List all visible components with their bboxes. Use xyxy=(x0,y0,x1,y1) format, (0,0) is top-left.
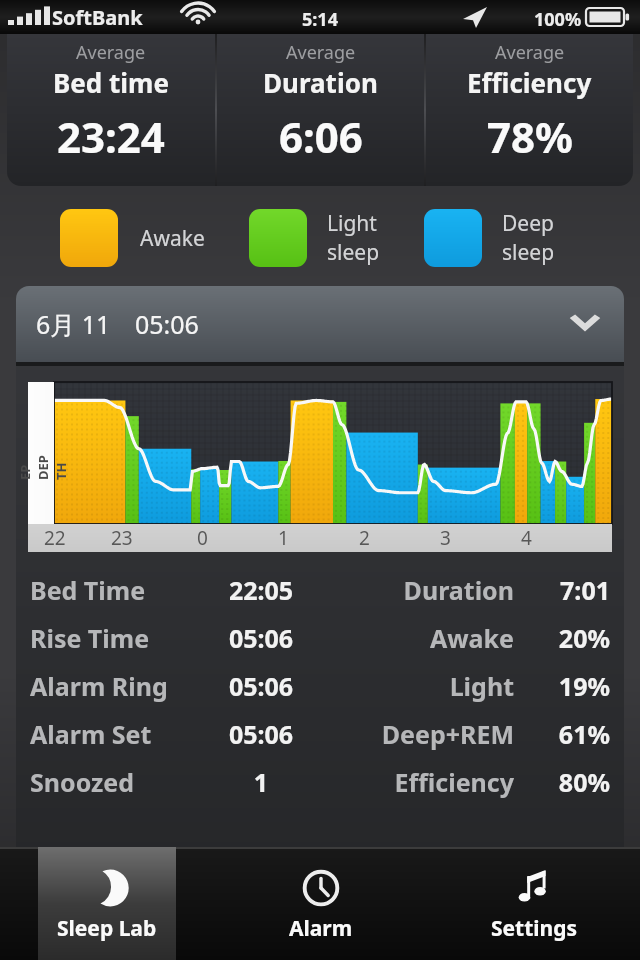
staticText: Alarm Set xyxy=(30,717,200,751)
staticText: 22:05 xyxy=(200,573,322,607)
button[interactable]: Average xyxy=(217,34,424,186)
staticText: Light xyxy=(322,669,514,703)
staticText: 1 xyxy=(200,765,322,799)
staticText: Snoozed xyxy=(30,765,200,799)
staticText: Average xyxy=(286,40,356,65)
staticText: Alarm xyxy=(289,914,353,943)
staticText: 23 xyxy=(111,525,133,551)
button[interactable]: 6月 11 xyxy=(16,286,624,362)
staticText: 4 xyxy=(521,525,532,551)
staticText: SLEEP DEPTH xyxy=(16,454,70,480)
staticText: sleep xyxy=(327,238,380,267)
staticText: Deep+REM xyxy=(322,717,514,751)
staticText: Bed time xyxy=(53,65,169,100)
staticText: 05:06 xyxy=(200,669,322,703)
button[interactable]: Settings xyxy=(465,847,603,960)
button[interactable]: Average xyxy=(426,34,633,186)
button[interactable]: Average xyxy=(7,34,215,186)
staticText: 80% xyxy=(528,765,610,799)
staticText: 7:01 xyxy=(528,573,610,607)
staticText: 5:14 xyxy=(302,7,338,32)
staticText: Awake xyxy=(140,224,205,253)
staticText: 19% xyxy=(528,669,610,703)
staticText: Awake xyxy=(322,621,514,655)
staticText: 20% xyxy=(528,621,610,655)
staticText: 05:06 xyxy=(135,307,199,341)
staticText: 05:06 xyxy=(200,717,322,751)
button[interactable]: Snoozed xyxy=(30,758,610,806)
staticText: 3 xyxy=(440,525,451,551)
button[interactable]: Alarm Ring xyxy=(30,662,610,710)
staticText: 22 xyxy=(44,525,66,551)
button[interactable]: Bed Time xyxy=(30,566,610,614)
staticText: Duration xyxy=(322,573,514,607)
staticText: 2 xyxy=(359,525,370,551)
staticText: Efficiency xyxy=(322,765,514,799)
staticText: Average xyxy=(76,40,146,65)
staticText: 0 xyxy=(197,525,208,551)
staticText: Light xyxy=(327,209,377,238)
button[interactable]: Rise Time xyxy=(30,614,610,662)
staticText: sleep xyxy=(502,238,555,267)
staticText: SoftBank xyxy=(52,4,143,31)
staticText: Average xyxy=(495,40,565,65)
staticText: Alarm Ring xyxy=(30,669,200,703)
button[interactable]: Alarm Set xyxy=(30,710,610,758)
staticText: 78% xyxy=(487,108,573,165)
staticText: 100% xyxy=(534,7,582,32)
staticText: Sleep Lab xyxy=(57,914,157,943)
staticText: 6月 11 xyxy=(36,307,111,341)
staticText: 23:24 xyxy=(57,108,165,165)
staticText: 61% xyxy=(528,717,610,751)
staticText: Deep xyxy=(502,209,554,238)
staticText: 05:06 xyxy=(200,621,322,655)
staticText: Rise Time xyxy=(30,621,200,655)
staticText: Efficiency xyxy=(467,65,592,100)
staticText: Settings xyxy=(491,914,578,943)
staticText: Duration xyxy=(263,65,378,100)
button[interactable]: Alarm xyxy=(252,847,390,960)
other: Collapse entry xyxy=(568,307,602,341)
button[interactable]: Sleep Lab xyxy=(38,847,176,960)
staticText: 6:06 xyxy=(279,108,363,165)
staticText: Bed Time xyxy=(30,573,200,607)
staticText: 1 xyxy=(278,525,289,551)
